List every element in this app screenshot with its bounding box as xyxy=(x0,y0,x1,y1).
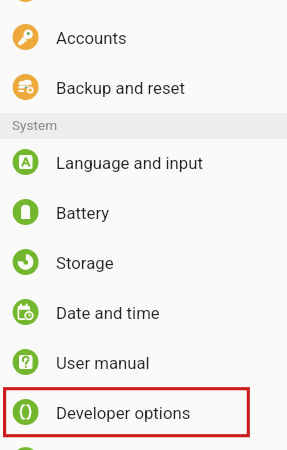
staticText: Accounts xyxy=(56,28,127,48)
button[interactable]: About device xyxy=(0,435,287,450)
staticText: Storage xyxy=(56,253,114,273)
staticText: Battery xyxy=(56,203,110,223)
staticText: Backup and reset xyxy=(56,78,185,98)
staticText: System xyxy=(12,117,58,133)
button[interactable]: Battery xyxy=(0,187,287,237)
button[interactable]: Storage xyxy=(0,237,287,287)
button[interactable]: Accounts xyxy=(0,12,287,62)
button[interactable]: Developer options xyxy=(0,387,287,437)
button[interactable]: Security xyxy=(0,0,287,14)
staticText: Language and input xyxy=(56,153,203,173)
staticText: Developer options xyxy=(56,403,191,423)
staticText: User manual xyxy=(56,353,150,373)
button[interactable]: Language and input xyxy=(0,137,287,187)
button[interactable]: User manual xyxy=(0,337,287,387)
button[interactable]: Backup and reset xyxy=(0,62,287,112)
button[interactable]: Date and time xyxy=(0,287,287,337)
staticText: Date and time xyxy=(56,303,160,323)
